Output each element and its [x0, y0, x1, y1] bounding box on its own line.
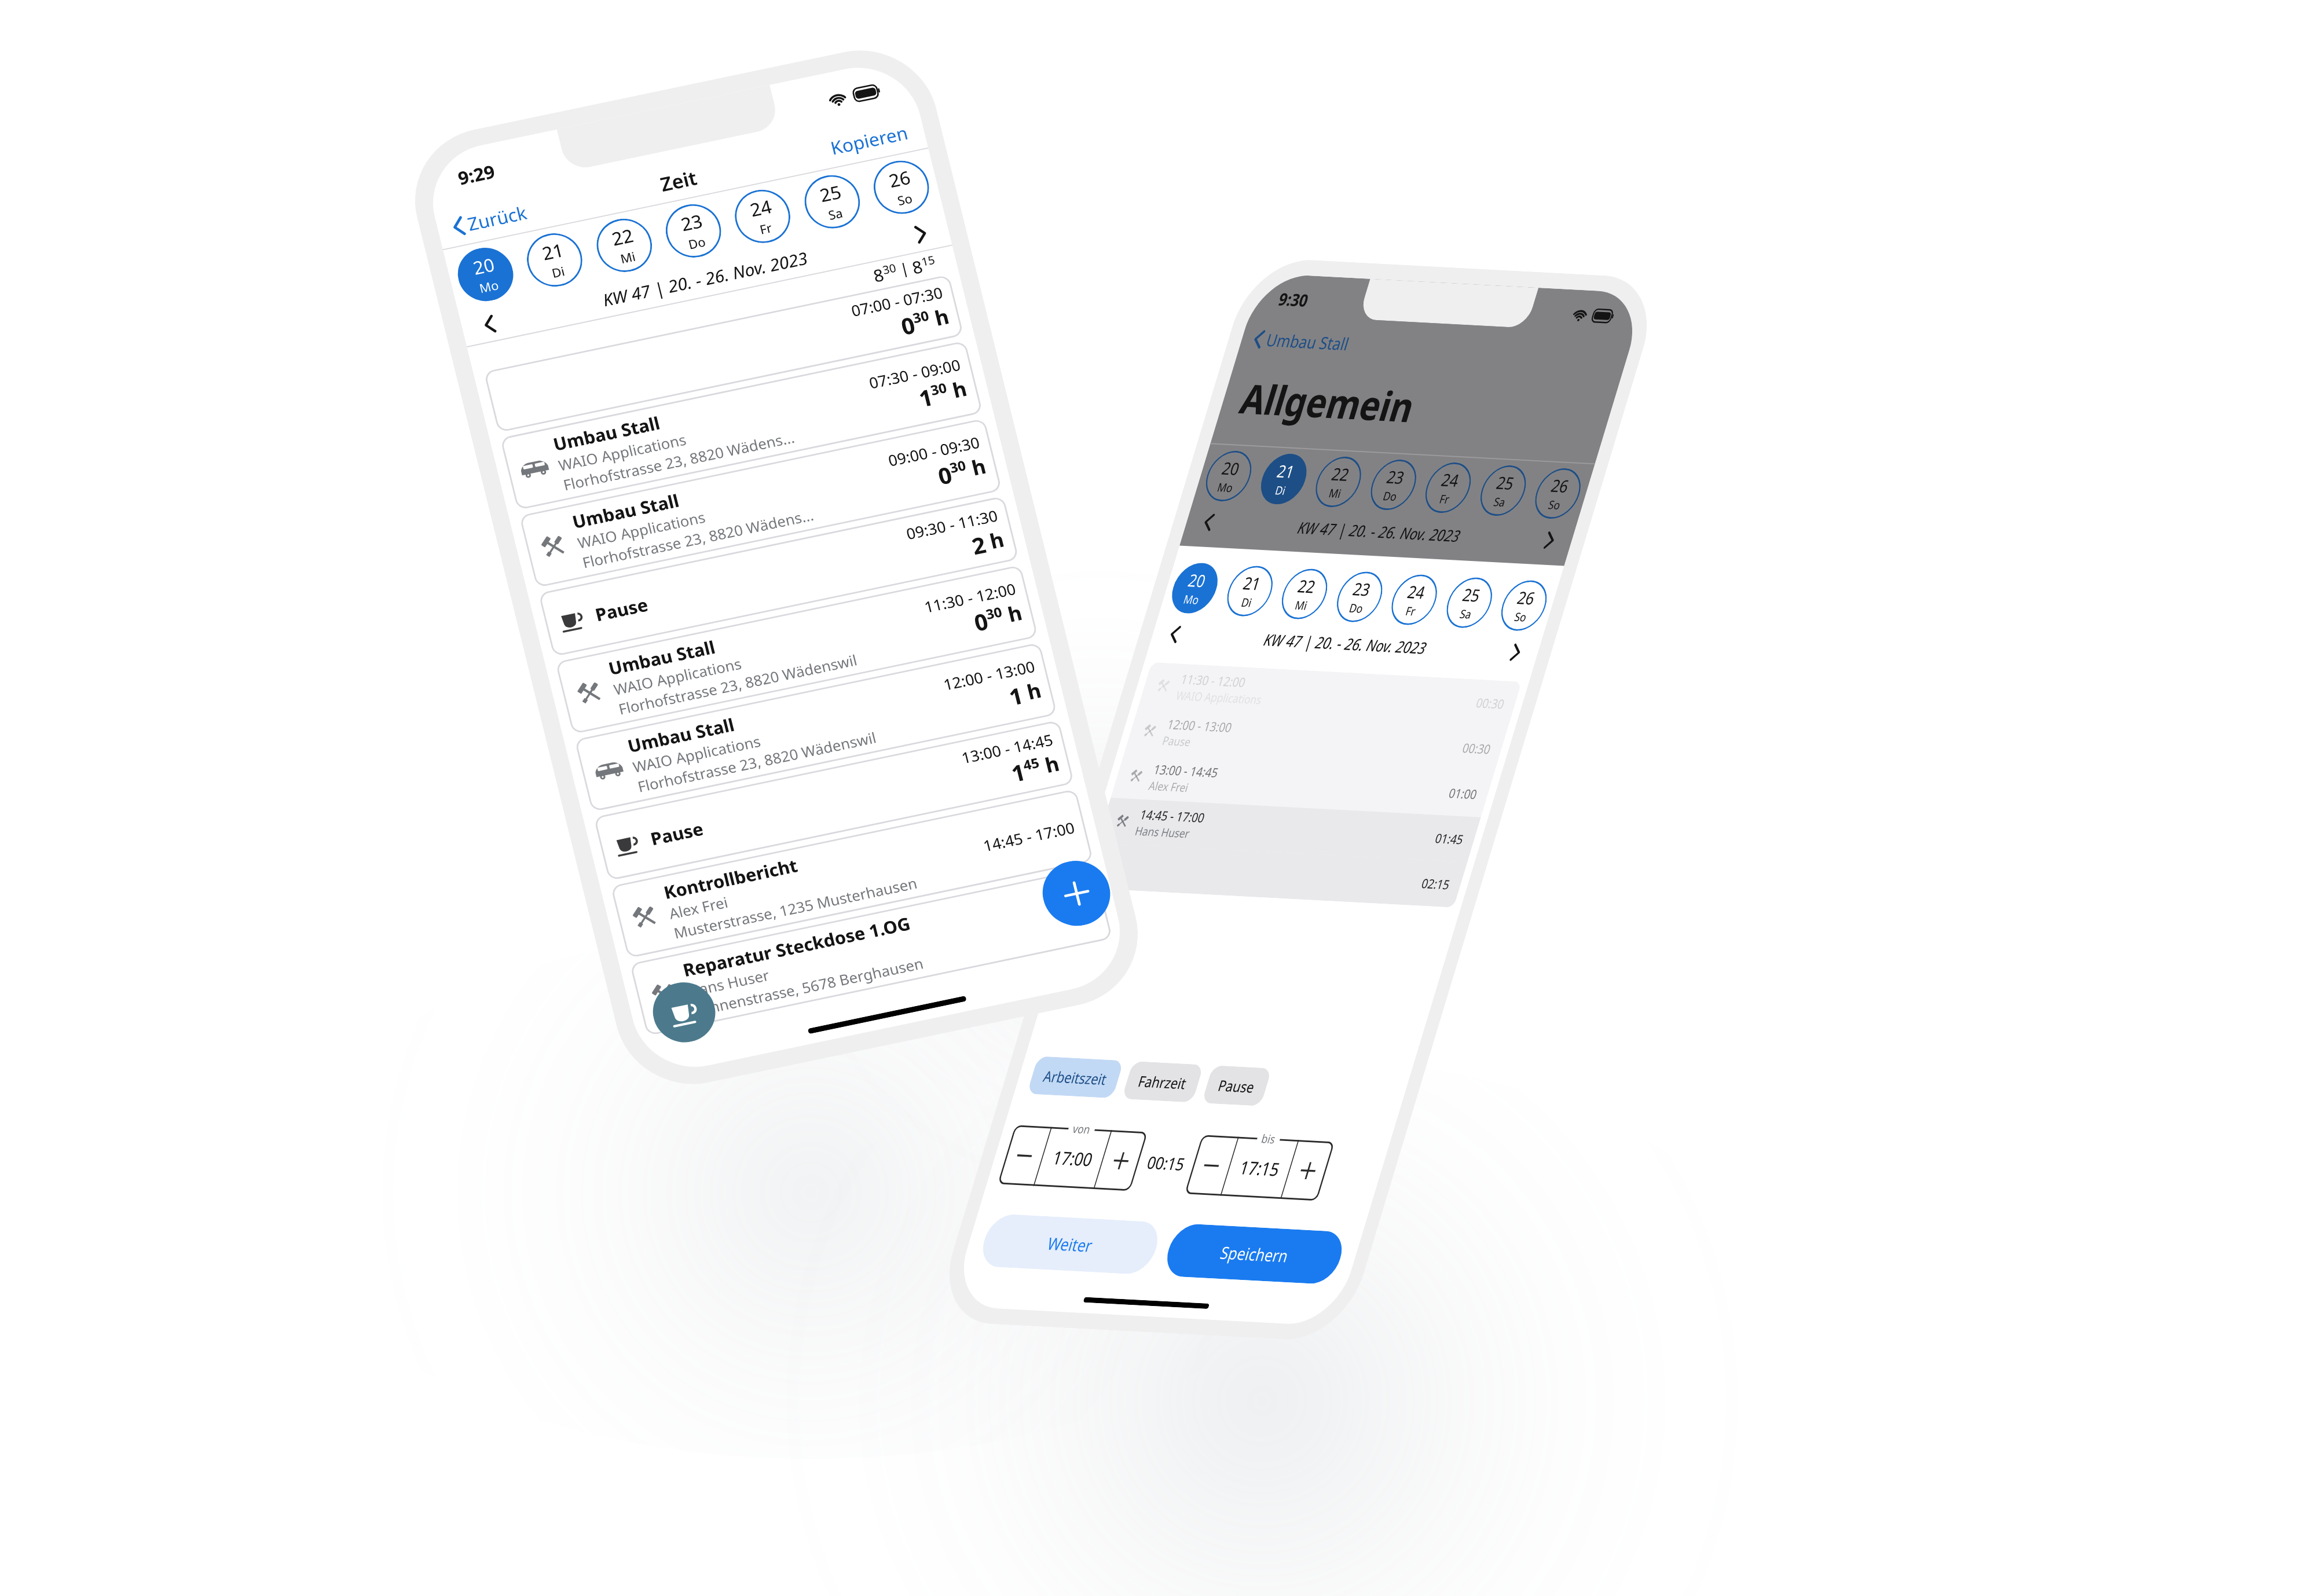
button[interactable]: Zurück: [449, 200, 531, 240]
staticText: 23: [1350, 577, 1374, 601]
staticText: 25: [817, 179, 844, 208]
staticText: Reparatur Steckdose 1.OG: [680, 911, 913, 982]
button[interactable]: 22: [591, 214, 658, 277]
button[interactable]: Next week: [1510, 645, 1522, 660]
button[interactable]: Umbau Stall: [555, 565, 1038, 734]
button[interactable]: 23: [1331, 570, 1389, 623]
button[interactable]: 23: [1364, 458, 1423, 511]
staticText: Pause: [1216, 1075, 1258, 1097]
staticText: Florhofstrasse 23, 8820 Wädenswil: [636, 727, 879, 797]
staticText: 25: [1460, 583, 1484, 607]
staticText: So: [896, 189, 914, 209]
button[interactable]: 11:30 - 12:00: [1138, 662, 1522, 727]
button[interactable]: 22: [1275, 568, 1334, 620]
staticText: 21: [1241, 571, 1264, 595]
button[interactable]: Previous week: [1203, 515, 1214, 530]
staticText: 15: [920, 252, 936, 269]
staticText: So: [1513, 609, 1529, 625]
button[interactable]: Pause: [593, 720, 1074, 881]
staticText: Arbeitszeit: [1041, 1066, 1109, 1089]
staticText: 21: [1274, 459, 1298, 483]
staticText: 24: [1439, 468, 1462, 492]
staticText: Zurück: [465, 200, 529, 236]
button[interactable]: Umbau Stall: [500, 341, 983, 510]
button[interactable]: 25: [1474, 464, 1532, 517]
button[interactable]: 21: [521, 228, 588, 292]
staticText: Fr: [758, 219, 774, 238]
staticText: 22: [1329, 462, 1353, 486]
button[interactable]: Previous week: [1169, 627, 1181, 642]
button[interactable]: Increase von: [1094, 1130, 1148, 1191]
staticText: Umbau Stall: [1263, 328, 1352, 355]
staticText: 26: [1548, 474, 1572, 497]
button[interactable]: 26: [1495, 579, 1553, 632]
staticText: Di: [1239, 594, 1254, 611]
button[interactable]: Add time entry: [1036, 855, 1117, 932]
button[interactable]: Speichern: [1161, 1223, 1348, 1285]
staticText: Di: [1273, 482, 1288, 499]
staticText: 01:00: [1447, 784, 1479, 803]
button[interactable]: 12:00 - 13:00: [1124, 707, 1508, 772]
button[interactable]: 24: [1419, 461, 1477, 514]
staticText: Mo: [477, 276, 501, 296]
button[interactable]: Next week: [915, 225, 928, 242]
staticText: 07:30 - 09:00: [867, 354, 963, 393]
staticText: Speichern: [1218, 1241, 1292, 1267]
button[interactable]: 25: [799, 170, 866, 233]
button[interactable]: Kopieren: [826, 120, 913, 161]
staticText: h: [1000, 598, 1025, 629]
staticText: h: [1019, 676, 1044, 706]
staticText: 12:00 - 13:00: [1165, 716, 1234, 736]
button[interactable]: Fahrzeit: [1122, 1061, 1204, 1102]
button[interactable]: 20: [1166, 562, 1224, 615]
button[interactable]: 26: [868, 156, 935, 219]
button[interactable]: Umbau Stall: [519, 418, 1002, 588]
button[interactable]: 25: [1440, 576, 1498, 629]
button[interactable]: Umbau Stall: [1251, 327, 1352, 355]
staticText: 30: [911, 306, 931, 327]
staticText: 2: [969, 529, 989, 561]
staticText: 26: [886, 165, 913, 193]
staticText: 09:30 - 11:30: [904, 505, 1000, 544]
staticText: h: [963, 452, 989, 482]
staticText: 13:00 - 14:45: [1152, 761, 1221, 781]
staticText: 30: [881, 260, 898, 278]
button[interactable]: 21: [1221, 565, 1279, 617]
staticText: Hans Huser: [686, 965, 771, 1001]
button[interactable]: Pause: [538, 496, 1019, 657]
staticText: Allgemein: [1234, 371, 1422, 434]
button[interactable]: 14:45 - 17:00: [1097, 798, 1481, 862]
staticText: 22: [609, 223, 636, 251]
button[interactable]: 22: [1309, 456, 1367, 508]
staticText: WAIO Applications: [631, 731, 763, 777]
button[interactable]: Arbeitszeit: [1027, 1056, 1124, 1098]
button[interactable]: Increase bis: [1281, 1140, 1335, 1201]
button[interactable]: 02:15: [1083, 843, 1467, 908]
staticText: 20: [1185, 568, 1209, 592]
staticText: Zeit: [658, 164, 700, 197]
staticText: Mo: [1215, 479, 1235, 496]
button[interactable]: Next week: [1544, 533, 1556, 548]
button[interactable]: Previous week: [483, 316, 496, 333]
button[interactable]: Pause: [1201, 1065, 1272, 1106]
button[interactable]: Decrease bis: [1185, 1135, 1238, 1196]
button[interactable]: 24: [729, 185, 796, 248]
button[interactable]: 23: [660, 199, 727, 263]
button[interactable]: Reparatur Steckdose 1.OG: [630, 866, 1113, 1036]
button[interactable]: Weiter: [977, 1213, 1164, 1275]
button[interactable]: 07:00 - 07:30: [484, 274, 964, 433]
staticText: 8: [910, 255, 925, 279]
button[interactable]: Decrease von: [998, 1125, 1051, 1186]
button[interactable]: 24: [1385, 573, 1443, 626]
staticText: Umbau Stall: [570, 488, 682, 534]
button[interactable]: 20: [452, 243, 519, 306]
button[interactable]: Start break: [647, 977, 722, 1048]
button[interactable]: 26: [1529, 467, 1587, 520]
button[interactable]: 21: [1255, 453, 1313, 505]
button[interactable]: 13:00 - 14:45: [1111, 752, 1495, 817]
staticText: Fr: [1404, 603, 1418, 619]
button[interactable]: Kontrollbericht: [610, 789, 1094, 958]
staticText: 30: [948, 456, 968, 477]
button[interactable]: Umbau Stall: [574, 642, 1057, 812]
button[interactable]: 20: [1200, 450, 1258, 502]
